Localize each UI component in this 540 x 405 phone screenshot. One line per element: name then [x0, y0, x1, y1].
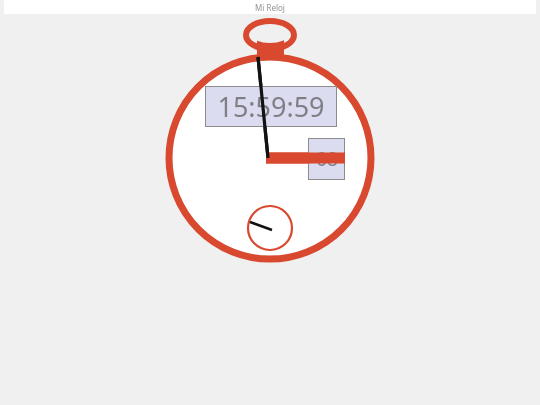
staticText: 08	[316, 146, 338, 172]
button[interactable]: 15:59:59	[205, 86, 337, 127]
staticText: Mi Reloj	[255, 2, 285, 13]
button[interactable]: 08	[308, 138, 345, 180]
button[interactable]: Mi Reloj	[4, 0, 536, 14]
staticText: 15:59:59	[217, 88, 325, 125]
button[interactable]: Stopwatch	[0, 0, 540, 405]
